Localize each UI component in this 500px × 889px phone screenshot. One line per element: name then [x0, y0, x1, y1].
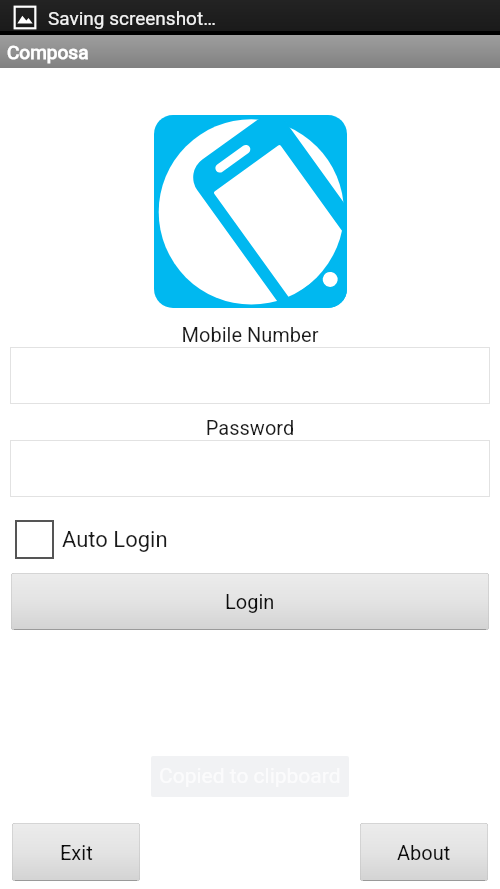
staticText: About — [397, 841, 451, 864]
staticText: Login — [225, 590, 275, 613]
button[interactable]: About — [360, 823, 488, 881]
staticText: Composa — [7, 41, 89, 63]
staticText: Saving screenshot… — [48, 7, 216, 29]
button[interactable]: Exit — [12, 823, 140, 881]
staticText: Exit — [60, 841, 93, 864]
staticText: Mobile Number — [0, 323, 500, 346]
staticText: Auto Login — [62, 527, 168, 553]
button[interactable]: Login — [11, 573, 489, 630]
staticText: Copied to clipboard — [159, 764, 341, 789]
staticText: Password — [0, 416, 500, 439]
button[interactable] — [10, 440, 490, 497]
other: Screenshot — [14, 6, 36, 29]
button[interactable]: Auto Login — [15, 520, 168, 559]
button[interactable] — [10, 347, 490, 404]
